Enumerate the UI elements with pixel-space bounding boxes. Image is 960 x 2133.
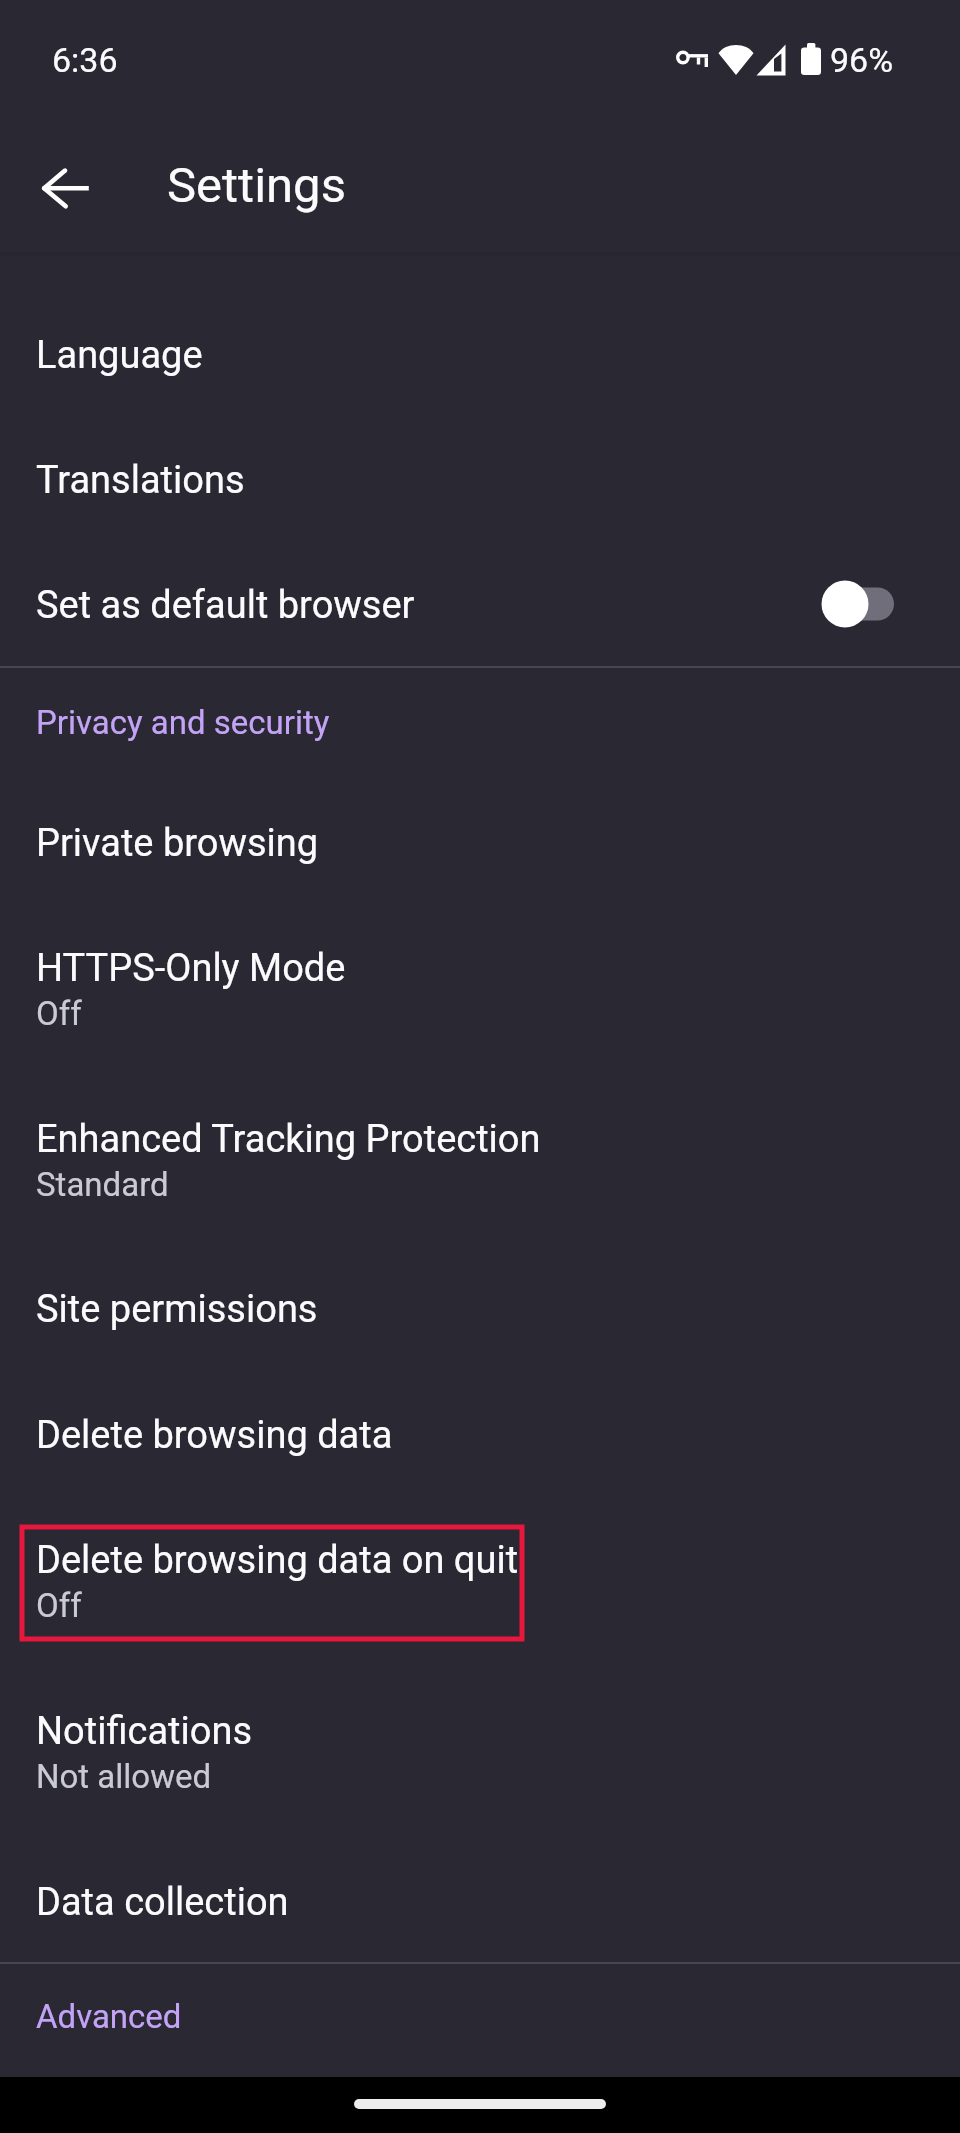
staticText: Off (36, 1586, 82, 1625)
staticText: Site permissions (36, 1287, 318, 1332)
staticText: Translations (36, 458, 245, 503)
staticText: Notifications (36, 1709, 253, 1754)
button[interactable]: Set as default browser (0, 562, 960, 666)
button[interactable]: Site permissions (0, 1266, 960, 1391)
staticText: Settings (167, 157, 346, 214)
staticText: Standard (36, 1165, 169, 1204)
staticText: 6:36 (52, 40, 118, 80)
button[interactable]: Enhanced Tracking Protection (0, 1096, 960, 1267)
staticText: Delete browsing data on quit (36, 1538, 519, 1583)
button[interactable]: Delete browsing data (0, 1392, 960, 1517)
button[interactable]: Language (0, 312, 960, 437)
staticText: Not allowed (36, 1757, 212, 1796)
button[interactable]: Notifications (0, 1688, 960, 1859)
staticText: Privacy and security (36, 703, 330, 742)
staticText: Advanced (36, 1997, 182, 2036)
button[interactable]: Data collection (0, 1859, 960, 1962)
button[interactable]: Translations (0, 437, 960, 562)
staticText: HTTPS-Only Mode (36, 946, 346, 991)
staticText: Language (36, 333, 203, 378)
button[interactable]: Private browsing (0, 800, 960, 925)
staticText: Private browsing (36, 821, 319, 866)
staticText: 96% (830, 40, 894, 80)
button[interactable]: Navigate up (18, 140, 114, 236)
button[interactable]: HTTPS-Only Mode (0, 925, 960, 1096)
staticText: Data collection (36, 1880, 289, 1925)
staticText: Set as default browser (36, 583, 415, 628)
staticText: Delete browsing data (36, 1413, 393, 1458)
staticText: Off (36, 994, 82, 1033)
button[interactable]: Delete browsing data on quit (0, 1517, 960, 1688)
staticText: Enhanced Tracking Protection (36, 1117, 541, 1162)
